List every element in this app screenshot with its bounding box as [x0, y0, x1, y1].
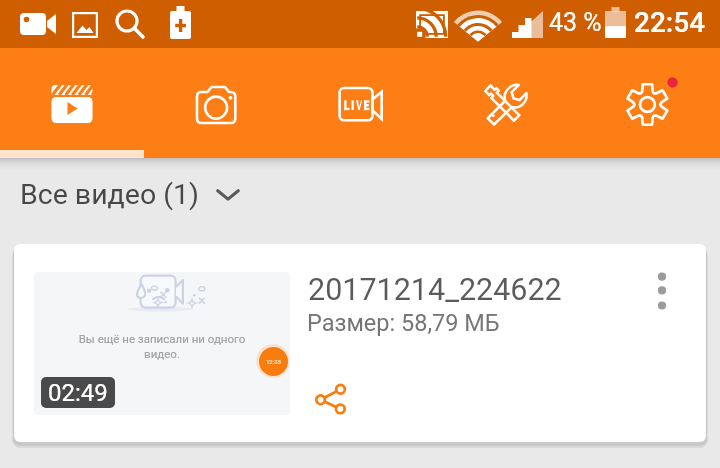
- staticText: 43 %: [549, 8, 602, 37]
- button[interactable]: Share: [303, 372, 359, 428]
- button[interactable]: Videos: [0, 48, 144, 158]
- button[interactable]: Tools: [432, 48, 576, 158]
- button[interactable]: More options: [634, 268, 690, 324]
- button[interactable]: Camera: [144, 48, 288, 158]
- button[interactable]: Settings: [576, 48, 720, 158]
- staticText: 12:33: [266, 358, 281, 365]
- staticText: Вы ещё не записали ни одного видео.: [78, 332, 246, 361]
- staticText: Все видео (1): [20, 178, 199, 211]
- staticText: Размер: 58,79 МБ: [307, 309, 500, 337]
- staticText: 22:54: [634, 6, 706, 39]
- button[interactable]: Вы ещё не записали ни одного видео.: [14, 244, 706, 442]
- button[interactable]: Live: [288, 48, 432, 158]
- staticText: 20171214_224622: [308, 272, 562, 308]
- button[interactable]: Все видео (1): [0, 158, 720, 230]
- staticText: 02:49: [48, 379, 108, 407]
